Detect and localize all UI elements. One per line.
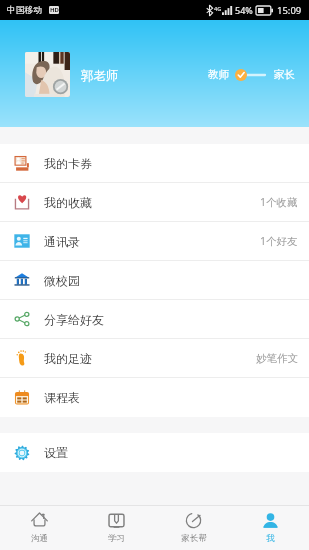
staticText: 家长 — [274, 68, 295, 81]
staticText: 我的足迹 — [44, 351, 92, 366]
staticText: 1个收藏 — [260, 195, 298, 209]
button[interactable]: 学习 — [78, 506, 155, 550]
staticText: 中国移动 — [7, 5, 43, 16]
staticText: 设置 — [44, 445, 68, 460]
button[interactable]: 通讯录 — [0, 222, 309, 260]
staticText: 我的卡券 — [44, 156, 92, 171]
button[interactable]: 我的收藏 — [0, 183, 309, 221]
staticText: 学习 — [108, 533, 125, 544]
button[interactable]: 沟通 — [0, 506, 78, 550]
button[interactable]: 教师 — [208, 68, 295, 81]
staticText: 4G — [214, 5, 222, 12]
button[interactable]: 家长帮 — [155, 506, 232, 550]
staticText: 课程表 — [44, 390, 80, 405]
staticText: 15:09 — [277, 4, 302, 17]
staticText: 沟通 — [31, 533, 48, 544]
staticText: 我的收藏 — [44, 195, 92, 210]
staticText: 54% — [235, 4, 253, 16]
button[interactable]: 我的足迹 — [0, 339, 309, 377]
staticText: 分享给好友 — [44, 312, 104, 327]
button[interactable]: 我 — [232, 506, 309, 550]
staticText: 我 — [266, 533, 275, 544]
staticText: 教师 — [208, 68, 229, 81]
staticText: 微校园 — [44, 273, 80, 288]
staticText: 通讯录 — [44, 234, 80, 249]
button[interactable]: 我的卡券 — [0, 144, 309, 182]
staticText: 1个好友 — [260, 234, 298, 248]
staticText: 家长帮 — [181, 533, 207, 544]
button[interactable]: 设置 — [0, 433, 309, 472]
staticText: 妙笔作文 — [256, 352, 298, 365]
button[interactable]: Profile photo — [25, 52, 70, 97]
button[interactable]: 课程表 — [0, 378, 309, 417]
staticText: 郭老师 — [81, 68, 119, 84]
button[interactable]: 分享给好友 — [0, 300, 309, 338]
button[interactable]: 微校园 — [0, 261, 309, 299]
staticText: HD — [50, 6, 59, 14]
